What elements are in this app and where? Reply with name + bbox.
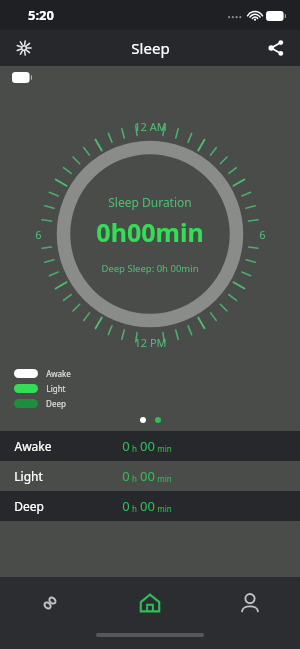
staticText: Awake (46, 368, 71, 379)
staticText: Deep Sleep: 0h 00min (101, 262, 199, 275)
staticText: min (157, 443, 172, 454)
button[interactable]: Deep (0, 491, 300, 521)
staticText: h (132, 503, 137, 514)
staticText: min (157, 503, 172, 514)
button[interactable]: Page 2 (155, 417, 161, 423)
staticText: 12 AM (134, 119, 167, 134)
button[interactable]: Link (0, 577, 100, 629)
staticText: Light (14, 468, 43, 484)
staticText: 00 (140, 497, 155, 515)
staticText: 6 (35, 227, 42, 242)
button[interactable]: Sleep tracking (10, 34, 38, 62)
staticText: 5:20 (28, 6, 54, 24)
staticText: 0 (122, 497, 130, 515)
staticText: Awake (14, 438, 52, 454)
staticText: 12 PM (134, 335, 167, 350)
staticText: Light (46, 383, 66, 394)
staticText: h (132, 443, 137, 454)
staticText: 6 (259, 227, 266, 242)
button[interactable]: Profile (200, 577, 300, 629)
button[interactable]: Light (0, 461, 300, 491)
staticText: h (132, 473, 137, 484)
staticText: 0 (122, 467, 130, 485)
staticText: 0 (122, 437, 130, 455)
button[interactable]: Awake (0, 431, 300, 461)
staticText: Deep (46, 398, 66, 409)
staticText: min (157, 473, 172, 484)
button[interactable]: Page 1 (140, 417, 146, 423)
staticText: 0h00min (96, 215, 204, 249)
button[interactable]: Share (262, 34, 290, 62)
staticText: Sleep (131, 38, 170, 58)
staticText: 00 (140, 437, 155, 455)
staticText: 00 (140, 467, 155, 485)
staticText: Deep (14, 498, 44, 514)
staticText: Sleep Duration (108, 194, 192, 210)
button[interactable]: Home (100, 577, 200, 629)
